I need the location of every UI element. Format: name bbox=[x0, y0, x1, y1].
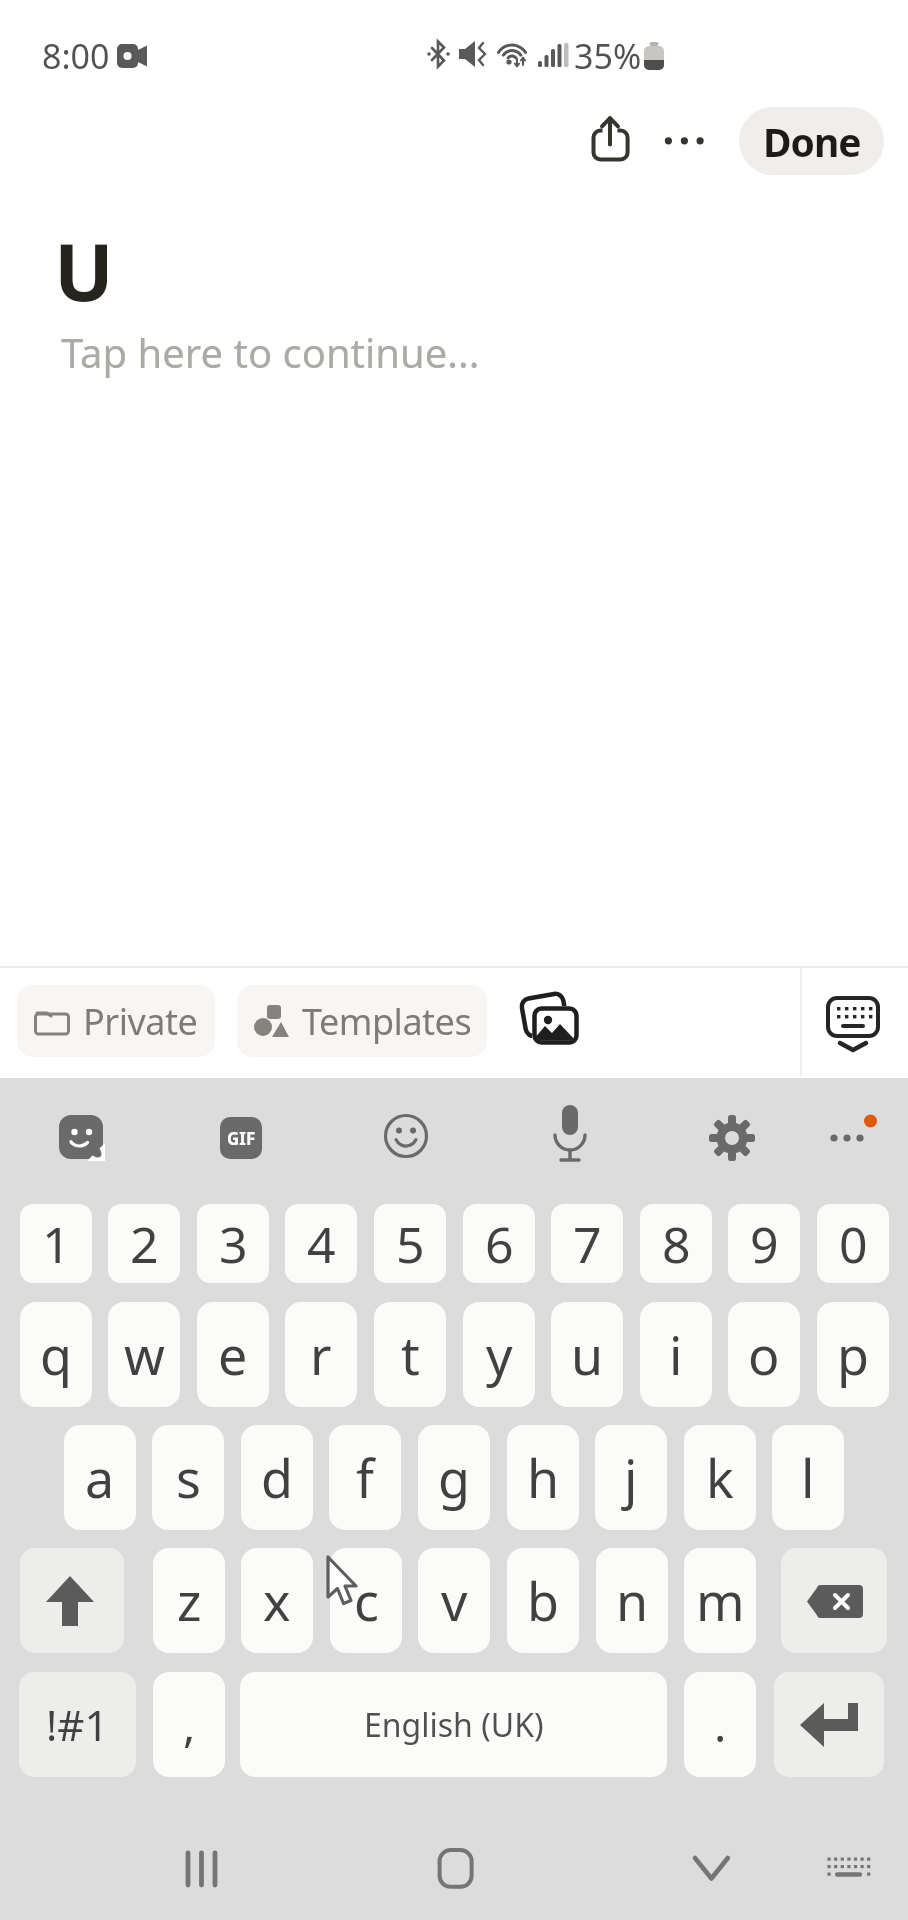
staticText: Templates bbox=[302, 997, 472, 1046]
staticText: U bbox=[54, 217, 114, 325]
staticText: 8:00 bbox=[42, 33, 110, 79]
button[interactable]: i bbox=[640, 1302, 712, 1407]
staticText: w bbox=[124, 1319, 165, 1390]
button[interactable] bbox=[692, 1854, 732, 1884]
button[interactable] bbox=[826, 1108, 882, 1156]
button[interactable] bbox=[20, 1548, 124, 1653]
staticText: 9 bbox=[750, 1210, 779, 1278]
button[interactable]: Done bbox=[739, 107, 884, 175]
button[interactable] bbox=[590, 112, 632, 164]
staticText: h bbox=[527, 1442, 560, 1513]
staticText: z bbox=[177, 1565, 202, 1636]
button[interactable]: r bbox=[285, 1302, 357, 1407]
button[interactable]: Templates bbox=[237, 985, 487, 1057]
button[interactable] bbox=[437, 1848, 475, 1890]
staticText: 7 bbox=[573, 1210, 602, 1278]
staticText: o bbox=[748, 1319, 780, 1390]
button[interactable]: e bbox=[197, 1302, 269, 1407]
button[interactable]: z bbox=[153, 1548, 225, 1653]
staticText: n bbox=[616, 1565, 649, 1636]
button[interactable]: j bbox=[595, 1425, 667, 1530]
staticText: a bbox=[85, 1442, 115, 1513]
button[interactable]: v bbox=[418, 1548, 490, 1653]
button[interactable] bbox=[826, 998, 882, 1052]
staticText: t bbox=[401, 1319, 420, 1390]
staticText: 5 bbox=[396, 1210, 425, 1278]
button[interactable] bbox=[384, 1114, 430, 1160]
staticText: c bbox=[354, 1565, 379, 1636]
button[interactable]: y bbox=[463, 1302, 535, 1407]
button[interactable]: p bbox=[817, 1302, 889, 1407]
button[interactable]: g bbox=[418, 1425, 490, 1530]
button[interactable] bbox=[59, 1115, 105, 1161]
staticText: y bbox=[486, 1319, 513, 1390]
button[interactable] bbox=[518, 990, 580, 1048]
staticText: English (UK) bbox=[364, 1703, 544, 1747]
staticText: , bbox=[183, 1693, 196, 1756]
button[interactable]: n bbox=[596, 1548, 668, 1653]
staticText: s bbox=[176, 1442, 201, 1513]
button[interactable]: 2 bbox=[108, 1204, 180, 1283]
button[interactable]: s bbox=[152, 1425, 224, 1530]
staticText: i bbox=[669, 1319, 683, 1390]
staticText: p bbox=[837, 1319, 869, 1390]
button[interactable]: Private bbox=[17, 985, 215, 1057]
button[interactable]: f bbox=[329, 1425, 401, 1530]
button[interactable]: c bbox=[330, 1548, 402, 1653]
button[interactable]: 5 bbox=[374, 1204, 446, 1283]
button[interactable]: t bbox=[374, 1302, 446, 1407]
button[interactable]: o bbox=[728, 1302, 800, 1407]
staticText: Private bbox=[83, 997, 198, 1046]
staticText: Tap here to continue... bbox=[61, 325, 480, 379]
staticText: 1 bbox=[42, 1210, 71, 1278]
staticText: GIF bbox=[227, 1127, 256, 1150]
button[interactable]: 4 bbox=[285, 1204, 357, 1283]
button[interactable]: 6 bbox=[463, 1204, 535, 1283]
staticText: 2 bbox=[130, 1210, 159, 1278]
button[interactable]: k bbox=[684, 1425, 756, 1530]
button[interactable]: 0 bbox=[817, 1204, 889, 1283]
staticText: 6 bbox=[485, 1210, 514, 1278]
staticText: r bbox=[310, 1319, 332, 1390]
button[interactable]: u bbox=[551, 1302, 623, 1407]
button[interactable]: 7 bbox=[551, 1204, 623, 1283]
button[interactable]: x bbox=[241, 1548, 313, 1653]
button[interactable]: English (UK) bbox=[240, 1672, 667, 1777]
button[interactable]: m bbox=[684, 1548, 756, 1653]
button[interactable]: !#1 bbox=[19, 1672, 136, 1777]
button[interactable]: 1 bbox=[20, 1204, 92, 1283]
staticText: u bbox=[571, 1319, 604, 1390]
button[interactable] bbox=[182, 1850, 222, 1888]
staticText: 3 bbox=[219, 1210, 248, 1278]
staticText: f bbox=[356, 1442, 374, 1513]
button[interactable]: GIF bbox=[220, 1117, 262, 1159]
button[interactable]: l bbox=[772, 1425, 844, 1530]
button[interactable] bbox=[708, 1114, 756, 1162]
button[interactable] bbox=[658, 130, 710, 152]
staticText: q bbox=[40, 1319, 72, 1390]
staticText: 8 bbox=[662, 1210, 691, 1278]
staticText: b bbox=[527, 1565, 559, 1636]
staticText: l bbox=[801, 1442, 815, 1513]
button[interactable]: 8 bbox=[640, 1204, 712, 1283]
button[interactable] bbox=[781, 1548, 887, 1653]
button[interactable] bbox=[826, 1856, 872, 1882]
button[interactable]: . bbox=[684, 1672, 756, 1777]
button[interactable]: d bbox=[241, 1425, 313, 1530]
staticText: x bbox=[263, 1565, 291, 1636]
button[interactable]: w bbox=[108, 1302, 180, 1407]
button[interactable] bbox=[774, 1672, 884, 1777]
button[interactable]: b bbox=[507, 1548, 579, 1653]
staticText: m bbox=[696, 1565, 745, 1636]
staticText: 0 bbox=[839, 1210, 868, 1278]
staticText: !#1 bbox=[46, 1696, 109, 1753]
button[interactable]: , bbox=[153, 1672, 225, 1777]
button[interactable]: a bbox=[64, 1425, 136, 1530]
staticText: j bbox=[624, 1442, 638, 1513]
button[interactable] bbox=[550, 1104, 590, 1164]
staticText: 35% bbox=[574, 33, 642, 79]
button[interactable]: 9 bbox=[728, 1204, 800, 1283]
button[interactable]: q bbox=[20, 1302, 92, 1407]
button[interactable]: h bbox=[507, 1425, 579, 1530]
button[interactable]: 3 bbox=[197, 1204, 269, 1283]
